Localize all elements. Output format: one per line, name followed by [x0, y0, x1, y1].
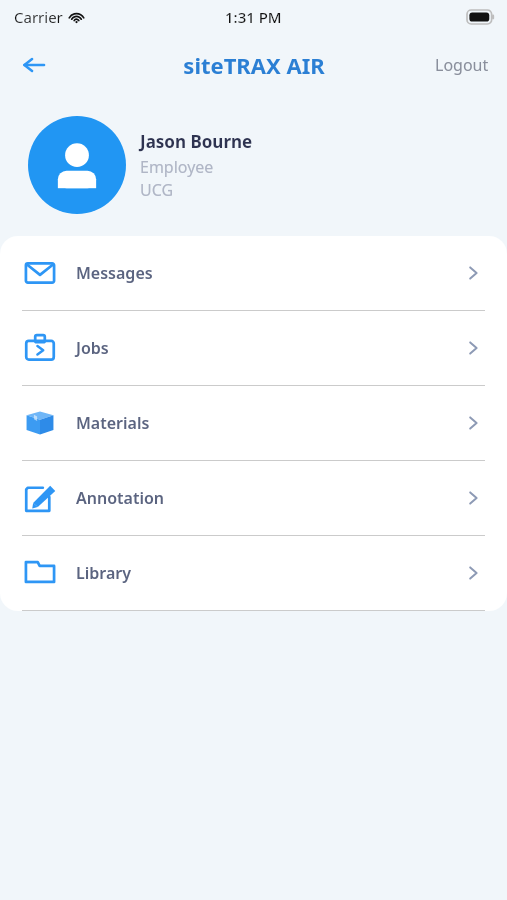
staticText: Carrier: [14, 7, 63, 27]
button[interactable]: Library: [0, 536, 507, 610]
staticText: Logout: [435, 54, 489, 76]
staticText: Jason Bourne: [140, 130, 253, 153]
staticText: Messages: [76, 262, 153, 284]
staticText: 1:31 PM: [225, 7, 282, 27]
button[interactable]: Annotation: [0, 461, 507, 535]
staticText: Jobs: [76, 337, 109, 359]
button[interactable]: Messages: [0, 236, 507, 310]
button[interactable]: Back: [12, 43, 56, 87]
staticText: Employee: [140, 156, 214, 178]
button[interactable]: Logout: [431, 46, 493, 84]
staticText: Library: [76, 562, 131, 584]
button[interactable]: Jobs: [0, 311, 507, 385]
staticText: Annotation: [76, 487, 165, 509]
staticText: UCG: [140, 179, 174, 201]
staticText: siteTRAX AIR: [183, 50, 325, 80]
staticText: Materials: [76, 412, 150, 434]
button[interactable]: Materials: [0, 386, 507, 460]
